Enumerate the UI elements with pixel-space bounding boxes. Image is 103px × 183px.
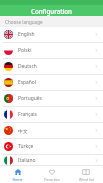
button[interactable]: Polski — [0, 43, 103, 58]
button[interactable]: Türkçe — [0, 139, 103, 154]
staticText: Choose language — [5, 19, 43, 25]
button[interactable]: Italiano — [0, 155, 103, 165]
staticText: Português — [18, 95, 42, 102]
staticText: Español — [18, 79, 37, 86]
button[interactable]: Favorites — [35, 166, 69, 183]
staticText: Deutsch — [18, 63, 37, 70]
staticText: Home — [12, 177, 23, 182]
button[interactable]: Português — [0, 91, 103, 106]
staticText: Favorites — [44, 177, 60, 182]
button[interactable]: Français — [0, 107, 103, 122]
staticText: Polski — [18, 47, 32, 54]
button[interactable]: Word list — [69, 166, 103, 183]
staticText: Word list — [79, 177, 94, 182]
staticText: Configuration — [31, 7, 72, 15]
staticText: Français — [18, 111, 37, 118]
button[interactable]: Español — [0, 75, 103, 90]
staticText: Türkçe — [18, 143, 34, 150]
staticText: Italiano — [18, 157, 36, 164]
button[interactable]: 中文 — [0, 123, 103, 138]
staticText: 中文 — [18, 128, 28, 134]
button[interactable]: Home — [0, 166, 35, 183]
button[interactable]: English — [0, 27, 103, 42]
button[interactable]: Deutsch — [0, 59, 103, 74]
staticText: English — [18, 31, 35, 38]
